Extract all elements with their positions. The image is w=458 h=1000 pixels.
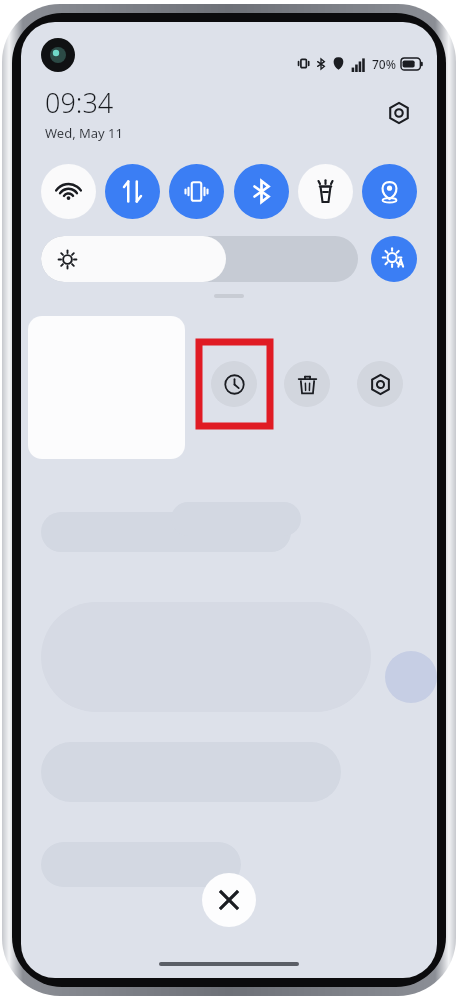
button[interactable]: Delay / timer (211, 361, 257, 407)
button[interactable] (41, 236, 358, 282)
button[interactable]: Settings (379, 93, 419, 133)
button[interactable]: Close (202, 873, 256, 927)
button[interactable]: Delete (284, 361, 330, 407)
button[interactable]: Mobile data (105, 164, 160, 219)
button[interactable]: Wi-Fi (41, 164, 96, 219)
staticText: 70% (372, 56, 396, 72)
button[interactable]: Location (362, 164, 417, 219)
staticText: Wed, May 11 (45, 124, 123, 142)
button[interactable]: Flashlight (298, 164, 353, 219)
button[interactable]: Settings (357, 361, 403, 407)
button[interactable]: Vibrate (169, 164, 224, 219)
staticText: 09:34 (45, 84, 114, 121)
button[interactable]: Bluetooth (234, 164, 289, 219)
button[interactable]: Auto brightness (371, 236, 417, 282)
